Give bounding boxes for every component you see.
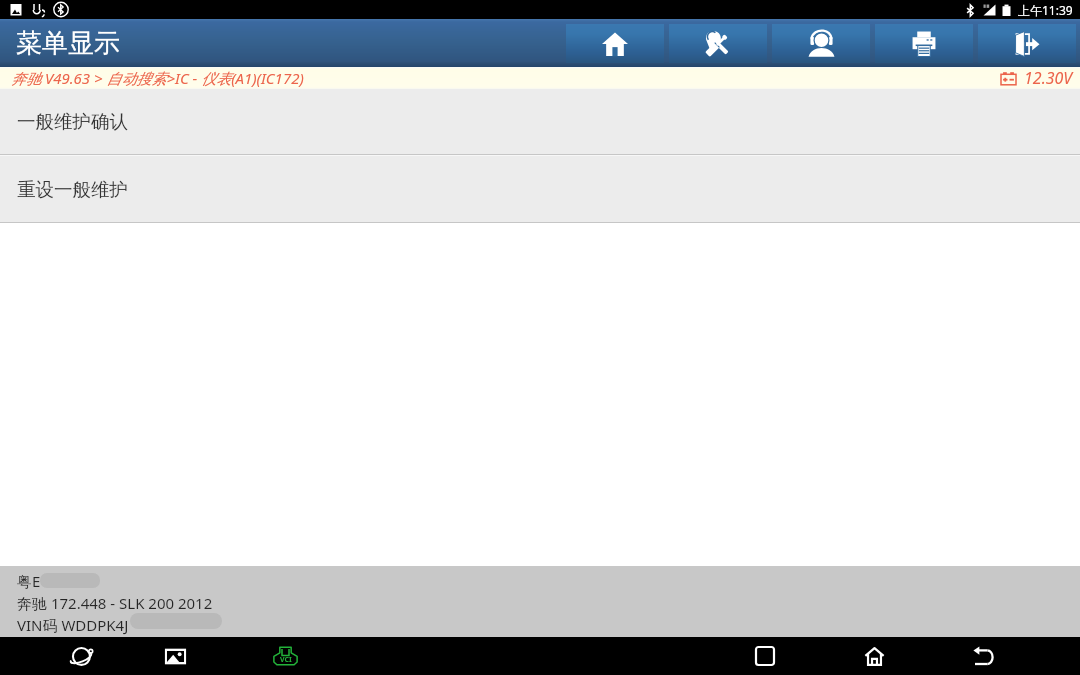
staticText: 上午11:39 (1018, 2, 1073, 18)
button[interactable]: Diagnostics tools (669, 24, 767, 63)
staticText: 粤E (17, 571, 41, 591)
staticText: 奔驰 172.448 - SLK 200 2012 (17, 593, 213, 613)
button[interactable]: Exit (978, 24, 1076, 63)
staticText: 12.30V (1024, 67, 1073, 89)
button[interactable]: Home (566, 24, 664, 63)
button[interactable]: Support (772, 24, 870, 63)
button[interactable]: Browser (62, 637, 100, 675)
button[interactable]: Gallery (156, 637, 194, 675)
staticText: 菜单显示 (16, 27, 120, 60)
button[interactable]: Recents (746, 637, 784, 675)
staticText: VIN码 WDDPK4J (17, 615, 129, 635)
staticText: 一般维护确认 (17, 110, 128, 133)
button[interactable]: Back (964, 637, 1002, 675)
staticText: 奔驰 V49.63 > 自动搜索>IC - 仪表(A1)(IC172) (11, 68, 304, 88)
button[interactable]: Home (855, 637, 893, 675)
staticText: VCI (280, 655, 292, 665)
button[interactable]: VCI (266, 637, 304, 675)
button[interactable]: 重设一般维护 (0, 156, 1080, 222)
staticText: 重设一般维护 (17, 178, 128, 201)
button[interactable]: Print (875, 24, 973, 63)
button[interactable]: 一般维护确认 (0, 89, 1080, 154)
